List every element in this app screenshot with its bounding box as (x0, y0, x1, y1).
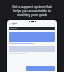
button[interactable]: More options (9, 23, 55, 25)
button[interactable]: Send (26, 66, 55, 71)
staticText: Get a support system that helps you acco… (2, 5, 62, 17)
button[interactable] (9, 32, 55, 42)
button[interactable] (9, 27, 55, 30)
